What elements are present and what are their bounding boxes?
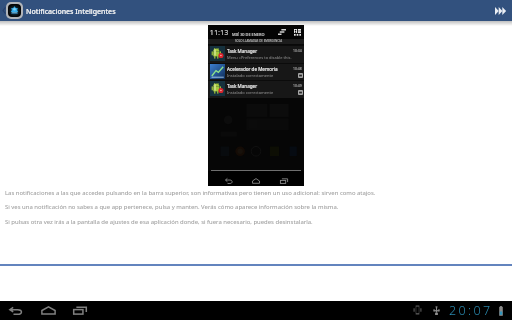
- staticText: Instalado correctamente: [227, 90, 274, 95]
- staticText: 20:07: [449, 302, 493, 319]
- staticText: MIÉ 30 DE ENERO: [232, 32, 265, 37]
- button[interactable]: Back: [1, 6, 7, 15]
- button[interactable]: Home: [37, 301, 59, 320]
- staticText: 10:49: [293, 83, 302, 88]
- button[interactable]: Acelerador de Memoria: [208, 63, 304, 81]
- staticText: Las notificaciones a las que accedes pul…: [5, 189, 376, 197]
- staticText: 11:13: [210, 28, 229, 37]
- button[interactable]: Notificaciones Inteligentes: [6, 2, 116, 19]
- staticText: Notificaciones Inteligentes: [26, 7, 116, 17]
- staticText: Menu »Preferences to disable this.: [227, 55, 292, 60]
- button[interactable]: Recent apps: [69, 301, 91, 320]
- staticText: SOLO LLAMADAS DE EMERGENCIA: [235, 39, 283, 43]
- button[interactable]: Back: [5, 301, 27, 320]
- staticText: Acelerador de Memoria: [227, 66, 278, 72]
- staticText: Si ves una notificación no sabes a que a…: [5, 203, 339, 211]
- button[interactable]: Task Manager: [208, 45, 304, 63]
- staticText: 10:48: [293, 66, 302, 71]
- staticText: Si pulsas otra vez irás a la pantalla de…: [5, 218, 313, 226]
- staticText: Instalado correctamente: [227, 73, 274, 78]
- staticText: Task Manager: [227, 48, 258, 54]
- staticText: 10:34: [293, 48, 302, 53]
- button[interactable]: Task Manager: [208, 80, 304, 98]
- button[interactable]: Next: [492, 3, 508, 18]
- staticText: Task Manager: [227, 83, 258, 89]
